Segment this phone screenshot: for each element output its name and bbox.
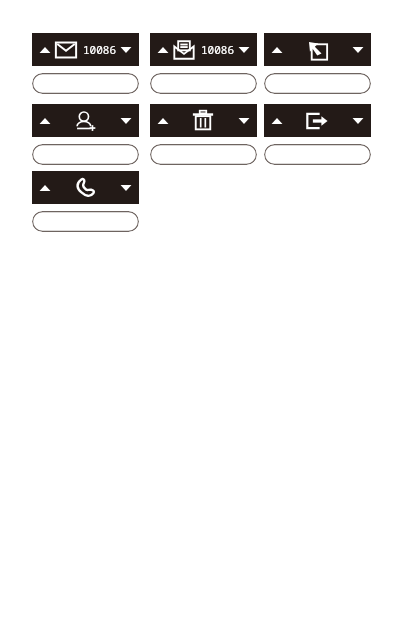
button[interactable]: Call: [32, 171, 139, 204]
button[interactable]: [150, 144, 257, 165]
button[interactable]: [264, 144, 371, 165]
button[interactable]: Reply: [264, 33, 371, 66]
staticText: 10086: [83, 42, 116, 57]
button[interactable]: [32, 211, 139, 232]
button[interactable]: Add contact: [32, 104, 139, 137]
button[interactable]: Unread mail 10086: [32, 33, 139, 66]
button[interactable]: Delete: [150, 104, 257, 137]
button[interactable]: [150, 73, 257, 94]
button[interactable]: [264, 73, 371, 94]
staticText: 10086: [201, 42, 234, 57]
button[interactable]: [32, 144, 139, 165]
button[interactable]: Read mail 10086: [150, 33, 257, 66]
button[interactable]: [32, 73, 139, 94]
button[interactable]: Exit: [264, 104, 371, 137]
